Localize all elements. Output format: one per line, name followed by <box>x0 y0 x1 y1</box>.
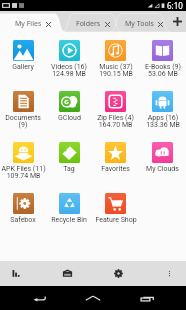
button[interactable]: Gallery <box>0 40 46 91</box>
button[interactable]: Settings <box>107 261 130 286</box>
staticText: Tag <box>63 165 75 173</box>
button[interactable]: GCloud <box>46 91 92 142</box>
staticText: Videos (16) 124.98 MB <box>51 63 87 77</box>
staticText: 6:10 <box>167 0 183 11</box>
button[interactable]: My Clouds <box>139 142 186 193</box>
staticText: Apps (16) 133.36 MB <box>146 114 180 128</box>
staticText: Recycle Bin <box>51 216 87 224</box>
staticText: Feature Shop <box>95 216 137 224</box>
button[interactable]: Tag <box>46 142 92 193</box>
button[interactable]: More <box>158 261 181 286</box>
button[interactable]: Feature Shop <box>92 193 139 244</box>
button[interactable]: Recents <box>130 286 164 310</box>
button[interactable]: Zip Files (4) 164.70 MB <box>92 91 139 142</box>
button[interactable]: My Files <box>0 11 66 32</box>
button[interactable]: Documents (9) <box>0 91 46 142</box>
button[interactable]: My Tools <box>119 11 169 32</box>
button[interactable]: Storage <box>56 261 79 286</box>
staticText: Safebox <box>10 216 36 224</box>
staticText: Documents (9) <box>0 114 46 128</box>
button[interactable]: Apps (16) 133.36 MB <box>139 91 186 142</box>
button[interactable]: Folders <box>66 11 119 32</box>
staticText: Gallery <box>12 63 34 71</box>
button[interactable]: Recycle Bin <box>46 193 92 244</box>
button[interactable]: Safebox <box>0 193 46 244</box>
staticText: My Files <box>15 19 42 29</box>
button[interactable]: Music (37) 190.15 MB <box>92 40 139 91</box>
staticText: Music (37) 190.15 MB <box>99 63 133 77</box>
button[interactable]: E-Books (9) 53.06 MB <box>139 40 186 91</box>
button[interactable]: Back <box>22 286 56 310</box>
button[interactable]: Home <box>76 286 110 310</box>
button[interactable]: New tab <box>169 11 186 32</box>
staticText: APK Files (11) 109.74 MB <box>1 165 46 179</box>
button[interactable]: Statistics <box>5 261 28 286</box>
button[interactable]: Videos (16) 124.98 MB <box>46 40 92 91</box>
staticText: Favorites <box>101 165 130 173</box>
staticText: GCloud <box>58 114 81 122</box>
staticText: My Tools <box>125 19 154 29</box>
button[interactable]: APK Files (11) 109.74 MB <box>0 142 46 193</box>
staticText: Zip Files (4) 164.70 MB <box>97 114 134 128</box>
button[interactable]: Favorites <box>92 142 139 193</box>
staticText: E-Books (9) 53.06 MB <box>145 63 181 77</box>
staticText: Folders <box>76 19 101 29</box>
staticText: My Clouds <box>146 165 179 173</box>
